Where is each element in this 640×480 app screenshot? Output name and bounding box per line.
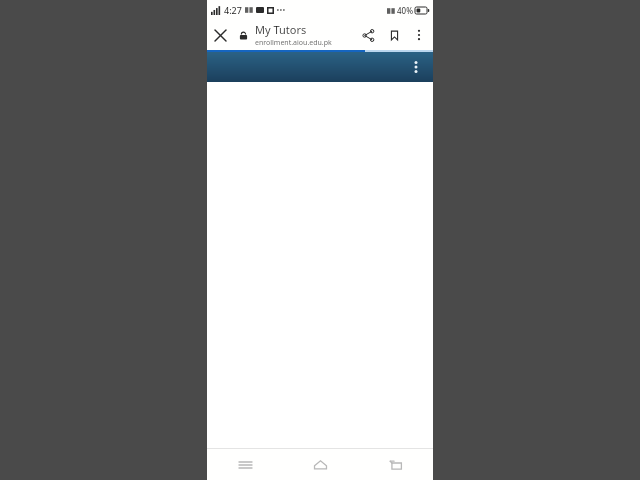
button[interactable]: Close [207, 22, 233, 48]
staticText: 40% [397, 5, 413, 16]
button[interactable]: Share [355, 22, 381, 48]
button[interactable]: Back [358, 449, 433, 480]
button[interactable]: Recent apps [207, 449, 283, 480]
button[interactable]: Page menu [407, 58, 425, 76]
staticText: My Tutors [255, 22, 307, 37]
staticText: enrollment.aiou.edu.pk [255, 38, 332, 48]
button[interactable]: Home [283, 449, 358, 480]
button[interactable]: My Tutors [255, 22, 355, 48]
button[interactable]: Bookmark [381, 22, 407, 48]
staticText: 4:27 [224, 4, 242, 16]
button[interactable]: More options [407, 23, 431, 47]
